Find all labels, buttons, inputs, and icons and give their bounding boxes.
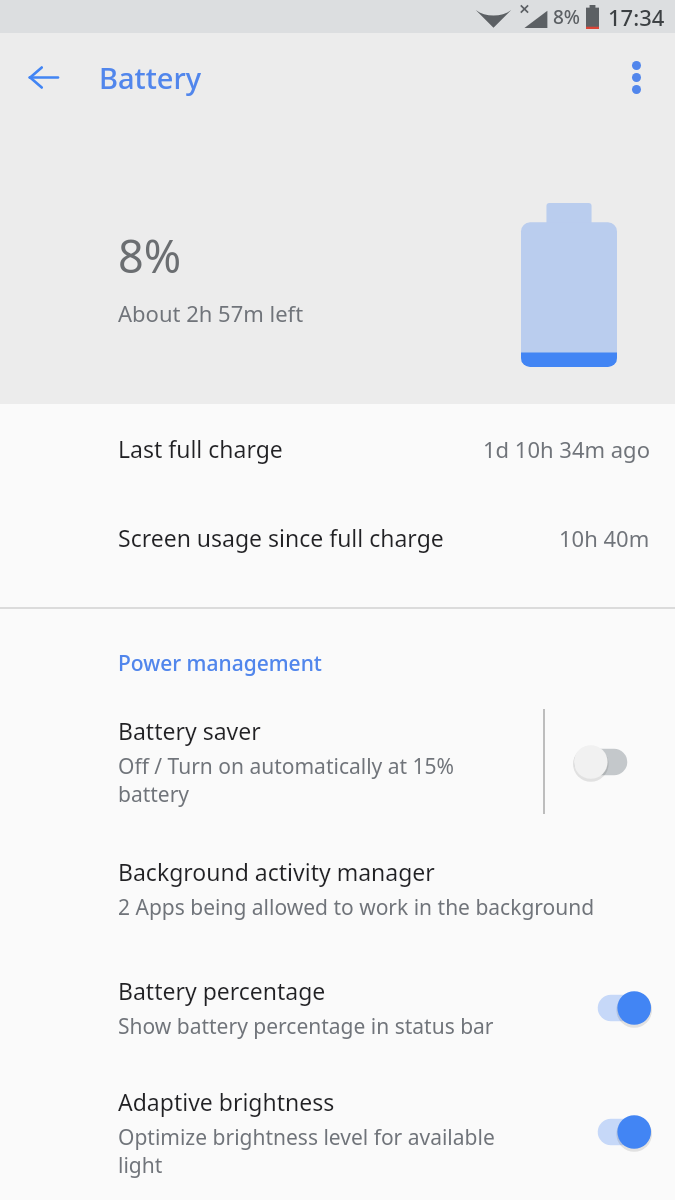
staticText: About 2h 57m left (118, 298, 304, 328)
button[interactable]: Battery saver (0, 694, 543, 829)
staticText: Adaptive brightness (118, 1086, 335, 1117)
button[interactable]: Adaptive brightness (0, 1067, 555, 1197)
staticText: Battery saver (118, 715, 261, 746)
staticText: Last full charge (118, 433, 283, 464)
staticText: Battery (99, 58, 201, 97)
button[interactable]: Screen usage since full charge (0, 493, 675, 582)
staticText: 2 Apps being allowed to work in the back… (118, 893, 595, 922)
staticText: Power management (118, 649, 322, 678)
staticText: Show battery percentage in status bar (118, 1012, 494, 1041)
staticText: Background activity manager (118, 856, 435, 887)
button[interactable]: Background activity manager (0, 829, 675, 949)
button[interactable]: Battery percentage toggle (555, 949, 675, 1067)
button[interactable]: Power management (118, 649, 322, 678)
button[interactable]: Adaptive brightness toggle (555, 1067, 675, 1197)
staticText: Screen usage since full charge (118, 522, 444, 553)
staticText: 8% (118, 225, 182, 286)
button[interactable]: Last full charge (0, 404, 675, 493)
staticText: Off / Turn on automatically at 15% batte… (118, 752, 455, 808)
staticText: 10h 40m (559, 523, 650, 553)
button[interactable]: Battery percentage (0, 949, 555, 1067)
button[interactable]: More options (608, 49, 664, 105)
button[interactable]: Battery saver toggle (545, 694, 675, 829)
staticText: 8% (553, 4, 581, 30)
staticText: Battery percentage (118, 975, 326, 1006)
staticText: Optimize brightness level for available … (118, 1123, 495, 1179)
staticText: 1d 10h 34m ago (483, 434, 650, 464)
staticText: 17:34 (608, 2, 665, 32)
button[interactable]: Navigate up (13, 47, 73, 107)
